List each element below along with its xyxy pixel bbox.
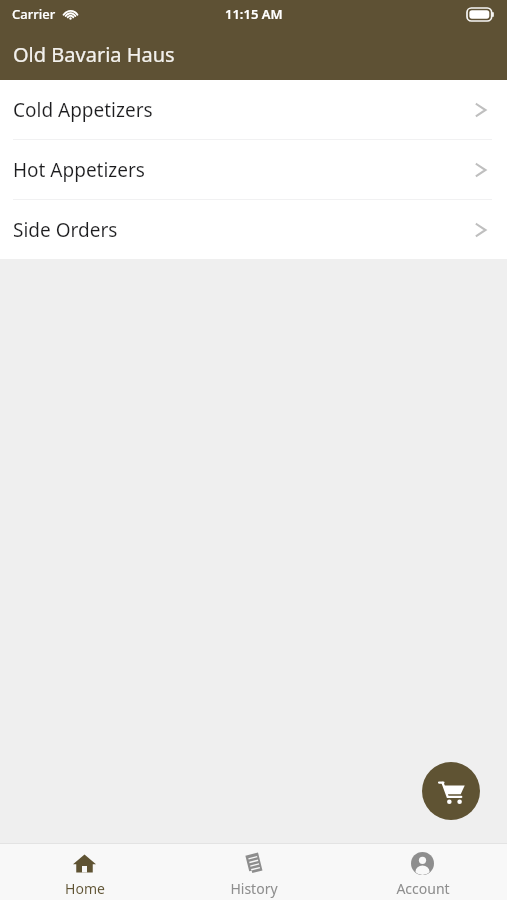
- staticText: Carrier: [12, 5, 56, 23]
- staticText: Hot Appetizers: [13, 157, 471, 183]
- button[interactable]: History: [169, 844, 338, 900]
- button[interactable]: Cart: [422, 762, 480, 820]
- staticText: History: [230, 879, 278, 898]
- button[interactable]: Account: [338, 844, 507, 900]
- button[interactable]: Hot Appetizers: [0, 140, 507, 199]
- staticText: Account: [396, 879, 450, 898]
- staticText: Old Bavaria Haus: [13, 41, 175, 68]
- staticText: Home: [65, 879, 105, 898]
- button[interactable]: Cold Appetizers: [0, 80, 507, 139]
- staticText: Cold Appetizers: [13, 97, 471, 123]
- staticText: Side Orders: [13, 217, 471, 243]
- staticText: 11:15 AM: [225, 5, 283, 23]
- button[interactable]: Side Orders: [0, 200, 507, 259]
- button[interactable]: Home: [0, 844, 169, 900]
